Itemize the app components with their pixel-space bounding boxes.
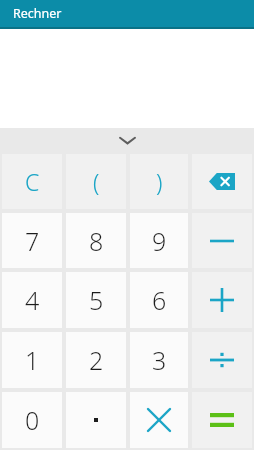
button[interactable]: Open bracket [66,154,126,209]
staticText: 1 [25,343,40,377]
button[interactable]: 6 [130,272,188,328]
staticText: 4 [25,283,40,317]
button[interactable]: 9 [130,213,188,268]
button[interactable]: 0 [2,392,62,448]
button[interactable]: C [2,154,62,209]
staticText: 7 [25,224,40,258]
button[interactable]: Close bracket [130,154,188,209]
button[interactable]: 4 [2,272,62,328]
button[interactable]: Plus [192,272,252,328]
button[interactable]: Minus [192,213,252,268]
button[interactable]: Equals [192,392,252,448]
button[interactable]: Collapse keypad [0,128,254,152]
button[interactable]: 2 [66,332,126,388]
staticText: 8 [89,224,104,258]
button[interactable]: 5 [66,272,126,328]
button[interactable]: 1 [2,332,62,388]
staticText: 5 [89,283,104,317]
staticText: 3 [152,343,167,377]
button[interactable]: 8 [66,213,126,268]
staticText: 9 [152,224,167,258]
button[interactable]: Divide [192,332,252,388]
button[interactable]: 3 [130,332,188,388]
staticText: ) [156,166,163,197]
button[interactable]: Backspace [192,154,252,209]
button[interactable]: 7 [2,213,62,268]
staticText: 2 [89,343,104,377]
button[interactable]: Multiply [130,392,188,448]
staticText: Rechner [13,5,62,22]
button[interactable]: Decimal point [66,392,126,448]
staticText: 6 [152,283,167,317]
staticText: ( [93,166,100,197]
staticText: C [25,166,40,197]
staticText: 0 [25,403,40,437]
